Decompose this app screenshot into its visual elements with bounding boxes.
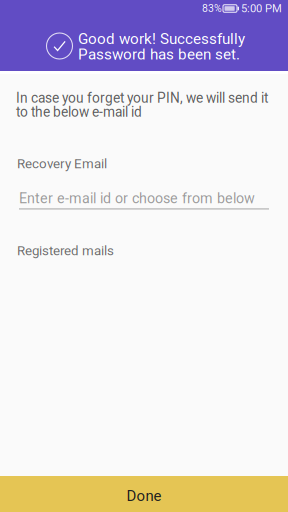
staticText: Done — [126, 487, 161, 505]
staticText: Password has been set. — [78, 45, 240, 63]
staticText: Recovery Email — [17, 156, 107, 172]
staticText: to the below e-mail id — [16, 104, 142, 120]
staticText: Registered mails — [17, 243, 114, 259]
staticText: Good work! Successfully — [78, 30, 245, 48]
button[interactable]: Enter e-mail id or choose from below — [19, 188, 269, 210]
staticText: 5:00 PM — [241, 2, 282, 15]
staticText: 83% — [202, 2, 222, 15]
button[interactable]: Done — [0, 476, 288, 512]
staticText: In case you forget your PIN, we will sen… — [16, 90, 268, 106]
staticText: Enter e-mail id or choose from below — [19, 190, 255, 207]
